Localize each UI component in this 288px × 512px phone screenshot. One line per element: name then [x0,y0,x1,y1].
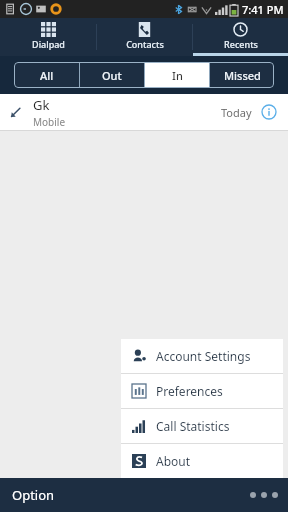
staticText: Out [102,68,122,83]
staticText: Preferences [156,383,223,399]
button[interactable]: Gk [0,94,288,130]
button[interactable]: In [145,62,209,88]
staticText: Account Settings [156,348,251,364]
button[interactable]: Missed [210,62,274,88]
button[interactable]: Option [12,478,55,512]
button[interactable]: Contacts [97,18,192,56]
staticText: Contacts [126,38,164,50]
staticText: Mobile [33,115,66,129]
staticText: Gk [33,96,50,114]
staticText: About [156,453,191,469]
staticText: In [172,68,183,83]
button[interactable]: About [121,444,283,478]
button[interactable]: More options [250,478,278,512]
staticText: Dialpad [32,38,65,50]
button[interactable]: Recents [193,18,288,56]
staticText: Today [221,105,252,120]
staticText: Recents [224,38,258,50]
staticText: Option [12,486,55,504]
button[interactable]: Account Settings [121,339,283,373]
staticText: Call Statistics [156,418,230,434]
button[interactable]: Out [80,62,144,88]
staticText: 7:41 PM [242,2,284,17]
button[interactable]: Preferences [121,374,283,408]
button[interactable]: All [14,62,79,88]
button[interactable]: Call Statistics [121,409,283,443]
button[interactable]: Call details [260,103,278,121]
staticText: All [40,68,54,83]
staticText: Missed [224,68,261,83]
button[interactable]: Dialpad [0,18,96,56]
